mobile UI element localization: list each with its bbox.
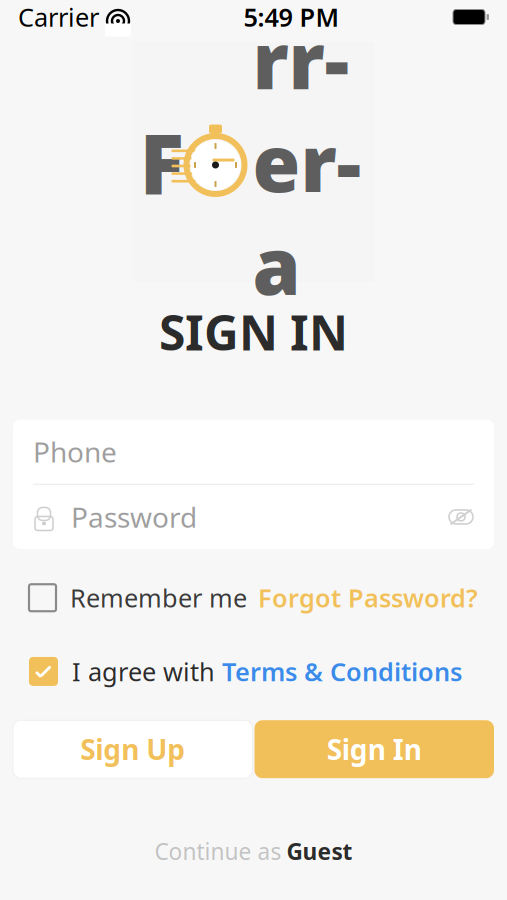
staticText: Sign In: [327, 731, 422, 768]
staticText: Continue as: [154, 836, 281, 866]
staticText: F: [139, 107, 184, 217]
button[interactable]: Remember me: [29, 575, 247, 620]
staticText: Password: [71, 498, 197, 536]
staticText: Remember me: [70, 581, 247, 614]
button[interactable]: I agree with Terms and Conditions: [29, 657, 58, 686]
staticText: SIGN IN: [159, 300, 348, 364]
staticText: Phone: [33, 433, 117, 470]
staticText: I agree with: [72, 655, 215, 688]
staticText: rrera: [252, 8, 361, 316]
staticText: Forgot Password?: [258, 581, 478, 614]
staticText: Terms & Conditions: [222, 655, 462, 688]
staticText: Sign Up: [80, 731, 185, 768]
button[interactable]: Phone: [13, 420, 494, 484]
button[interactable]: Password: [13, 485, 494, 549]
button[interactable]: Forgot Password?: [258, 575, 478, 620]
button[interactable]: Terms & Conditions: [222, 651, 462, 692]
staticText: Guest: [286, 836, 352, 866]
button[interactable]: Sign Up: [13, 720, 252, 778]
staticText: 5:49 PM: [243, 0, 339, 34]
button[interactable]: Continue as: [134, 826, 372, 876]
staticText: Carrier: [18, 0, 99, 34]
button[interactable]: Sign In: [254, 720, 494, 778]
